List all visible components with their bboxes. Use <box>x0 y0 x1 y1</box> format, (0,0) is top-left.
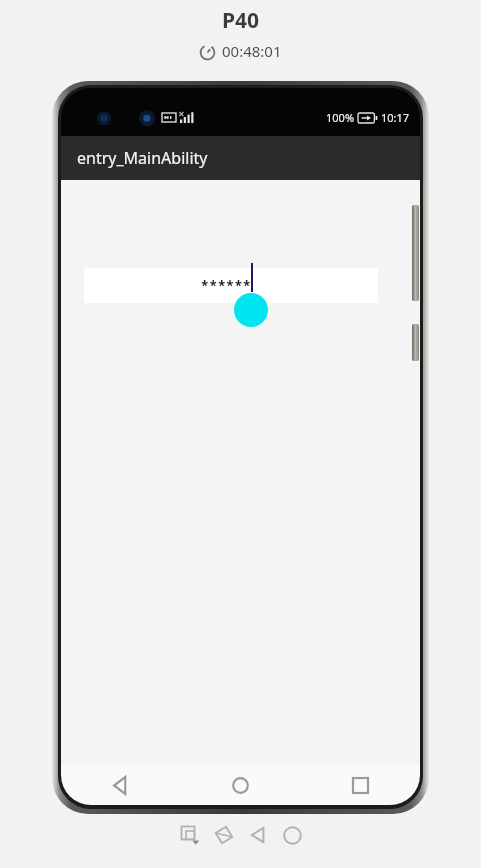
staticText: ****** <box>200 276 251 295</box>
button[interactable]: Rotate <box>207 818 241 852</box>
button[interactable]: Back <box>241 818 275 852</box>
staticText: 00:48:01 <box>222 41 282 61</box>
button[interactable]: Indicator <box>234 293 268 327</box>
other: Power <box>412 324 419 361</box>
staticText: 100% <box>326 110 355 125</box>
staticText: 10:17 <box>381 110 410 125</box>
staticText: P40 <box>222 6 260 35</box>
staticText: entry_MainAbility <box>77 147 208 169</box>
button[interactable]: ****** <box>84 268 378 303</box>
button[interactable]: Recents <box>300 765 420 805</box>
other: Volume <box>412 205 419 301</box>
button[interactable]: Back <box>61 765 180 805</box>
button[interactable]: Home <box>275 818 309 852</box>
button[interactable]: Home <box>180 765 300 805</box>
button[interactable]: Screenshot <box>173 818 207 852</box>
